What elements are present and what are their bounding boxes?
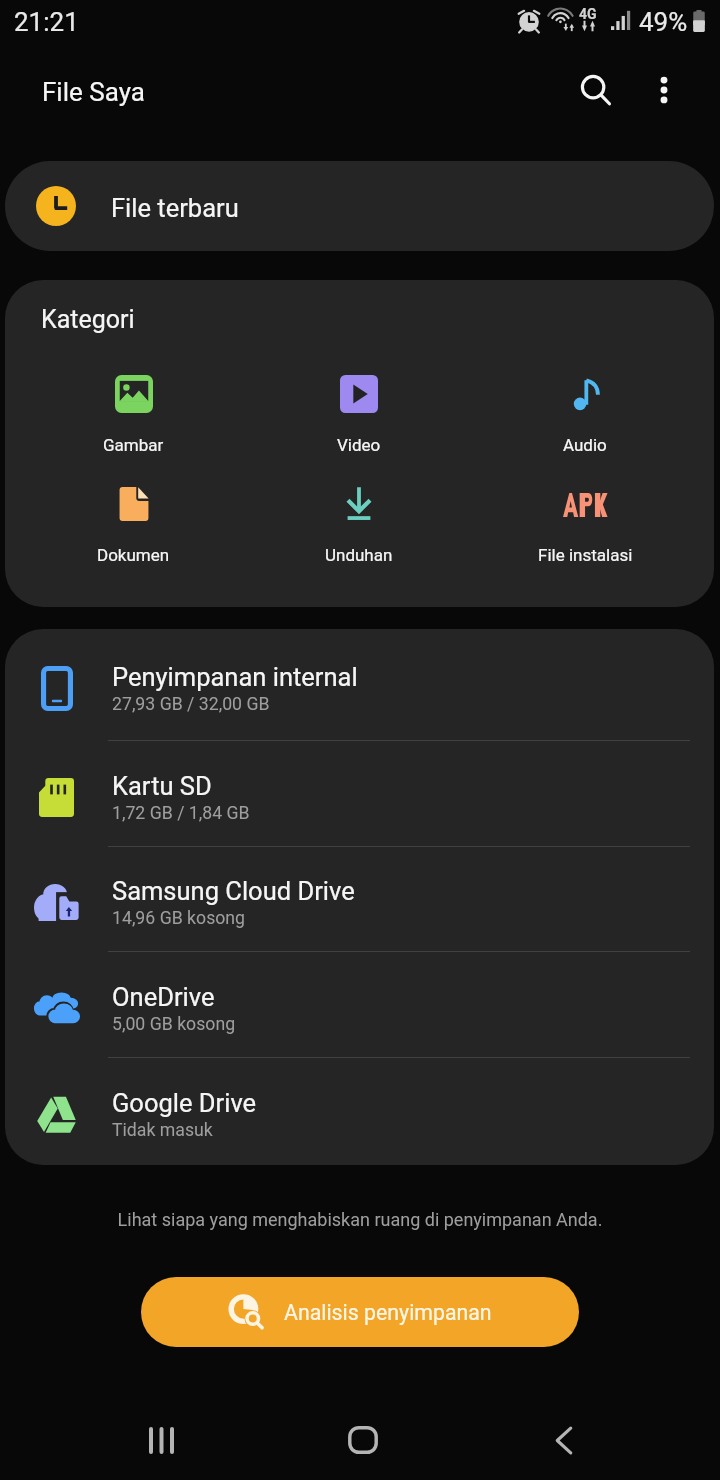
button[interactable]: Video bbox=[246, 375, 472, 470]
button[interactable]: More options bbox=[632, 64, 696, 116]
staticText: Audio bbox=[563, 435, 607, 455]
staticText: File instalasi bbox=[538, 545, 633, 565]
staticText: Video bbox=[337, 435, 381, 455]
staticText: OneDrive bbox=[112, 982, 215, 1012]
button[interactable]: Search bbox=[564, 64, 628, 116]
button[interactable]: Back bbox=[504, 1400, 624, 1480]
staticText: 4G bbox=[579, 6, 597, 22]
staticText: Google Drive bbox=[112, 1088, 257, 1118]
staticText: File Saya bbox=[42, 77, 145, 107]
staticText: 14,96 GB kosong bbox=[112, 908, 246, 929]
button[interactable]: Penyimpanan internal bbox=[5, 629, 714, 741]
staticText: Penyimpanan internal bbox=[112, 662, 358, 692]
staticText: Unduhan bbox=[325, 545, 393, 565]
button[interactable]: Kartu SD bbox=[5, 741, 714, 847]
staticText: Kategori bbox=[41, 305, 135, 334]
staticText: Kartu SD bbox=[112, 771, 212, 801]
button[interactable]: OneDrive bbox=[5, 952, 714, 1058]
staticText: 1,72 GB / 1,84 GB bbox=[112, 803, 250, 824]
button[interactable]: Recent apps bbox=[101, 1400, 221, 1480]
staticText: Lihat siapa yang menghabiskan ruang di p… bbox=[0, 1209, 720, 1230]
staticText: Gambar bbox=[103, 435, 164, 455]
button[interactable]: File instalasi bbox=[472, 485, 698, 580]
button[interactable]: Home bbox=[302, 1400, 422, 1480]
staticText: Samsung Cloud Drive bbox=[112, 876, 355, 906]
button[interactable]: Google Drive bbox=[5, 1058, 714, 1165]
button[interactable]: Samsung Cloud Drive bbox=[5, 847, 714, 952]
staticText: Dokumen bbox=[97, 545, 170, 565]
button[interactable]: Analisis penyimpanan bbox=[141, 1277, 579, 1347]
button[interactable]: Unduhan bbox=[246, 485, 472, 580]
staticText: Tidak masuk bbox=[112, 1120, 213, 1141]
staticText: File terbaru bbox=[111, 193, 239, 223]
button[interactable]: File terbaru bbox=[5, 161, 714, 251]
staticText: 27,93 GB / 32,00 GB bbox=[112, 694, 270, 715]
button[interactable]: Audio bbox=[472, 375, 698, 470]
button[interactable]: Dokumen bbox=[21, 485, 246, 580]
staticText: 21:21 bbox=[14, 7, 79, 37]
button[interactable]: Gambar bbox=[21, 375, 246, 470]
staticText: Analisis penyimpanan bbox=[284, 1300, 492, 1325]
staticText: 5,00 GB kosong bbox=[112, 1014, 236, 1035]
staticText: 49% bbox=[639, 7, 688, 37]
